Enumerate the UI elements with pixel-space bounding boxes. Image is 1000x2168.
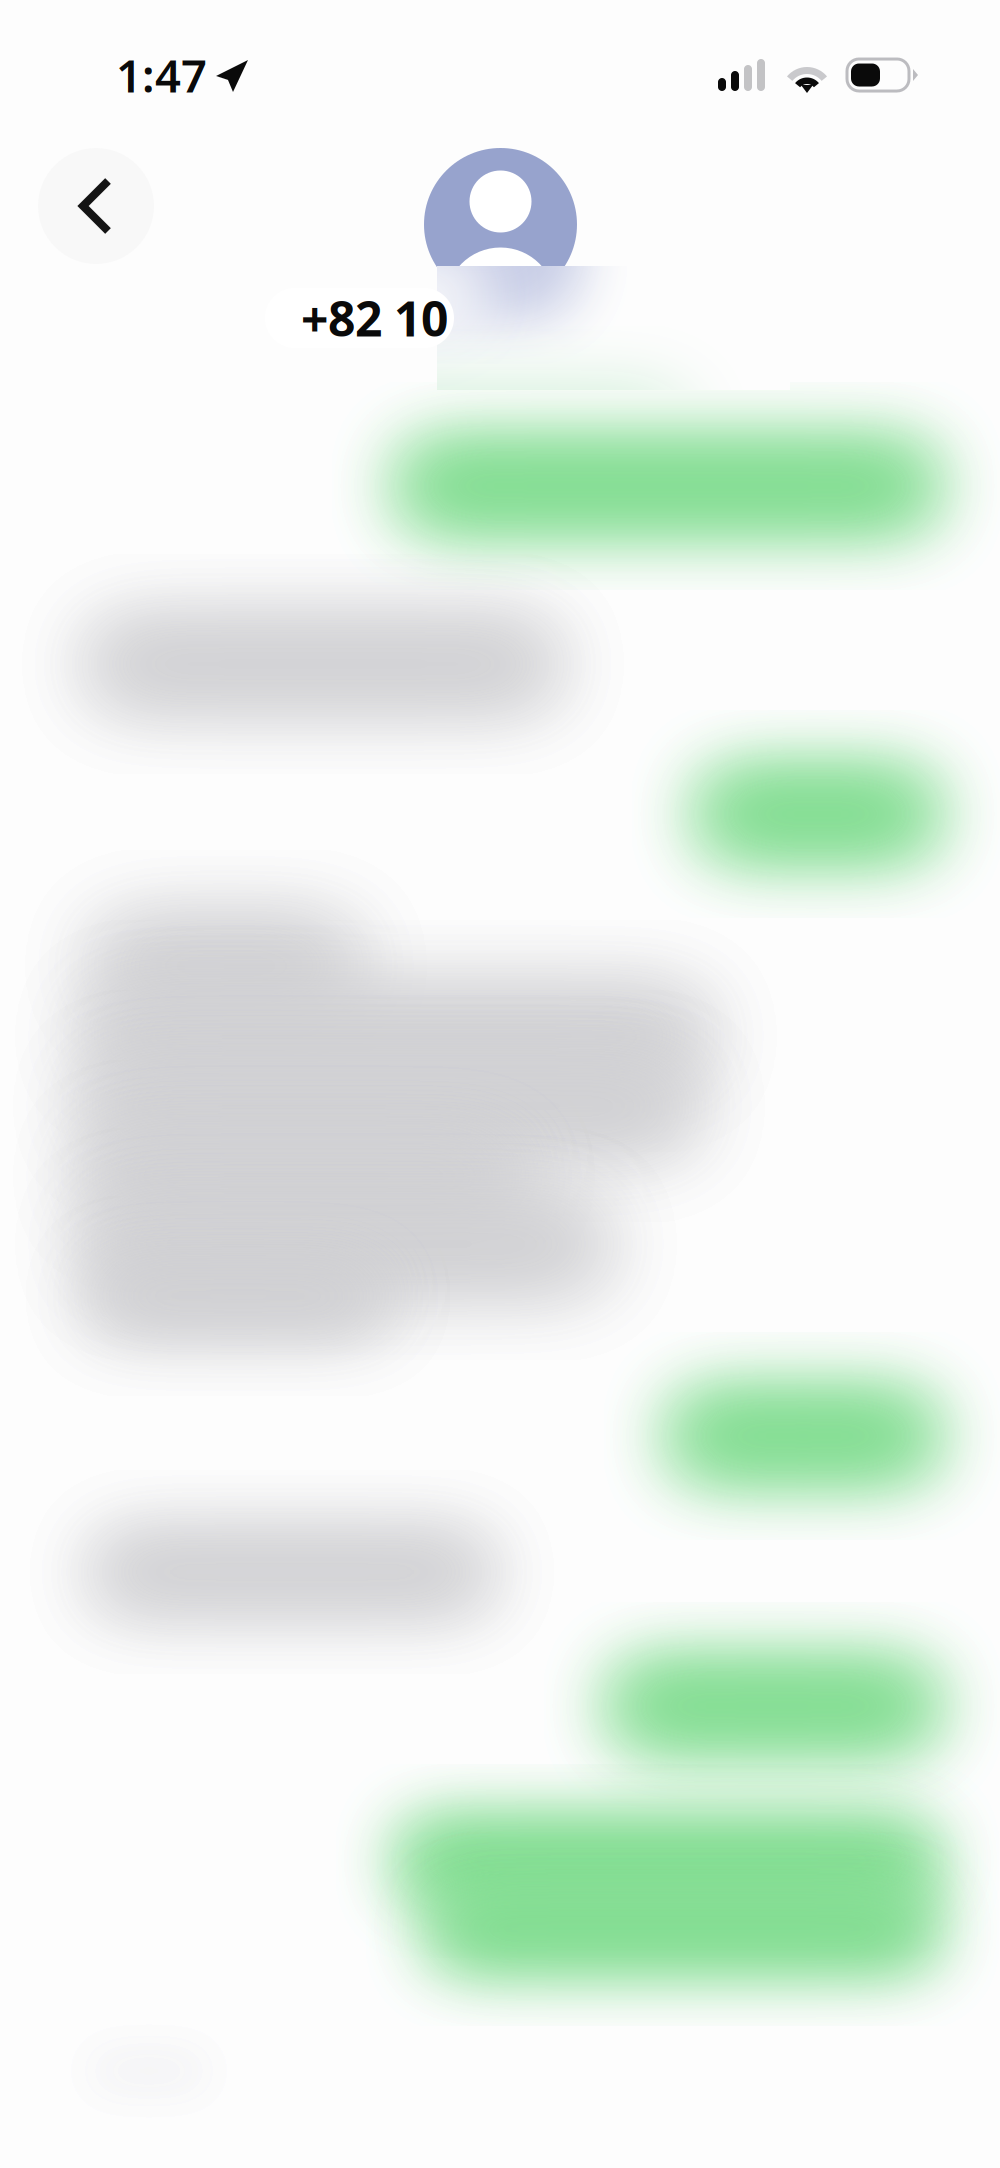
staticText: 1:47	[116, 45, 207, 105]
button[interactable]: Back	[38, 148, 154, 264]
staticText: +82 10	[301, 286, 448, 350]
